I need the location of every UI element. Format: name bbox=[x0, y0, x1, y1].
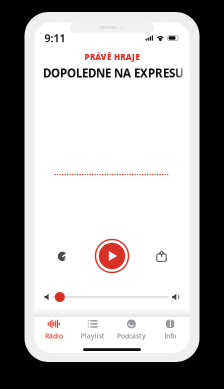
staticText: Podcasty bbox=[117, 331, 146, 340]
staticText: Playlist bbox=[81, 331, 105, 340]
staticText: PRÁVĚ HRAJE bbox=[84, 52, 139, 62]
staticText: Info bbox=[164, 331, 176, 340]
staticText: DOPOLEDNE NA EXPRESU bbox=[43, 65, 184, 81]
staticText: z bbox=[63, 253, 66, 260]
button[interactable]: Rádio bbox=[34, 317, 73, 341]
button[interactable]: Playlist bbox=[73, 317, 112, 341]
button[interactable]: Sleep timer bbox=[49, 239, 75, 273]
button[interactable]: i bbox=[151, 317, 190, 341]
staticText: 9:11 bbox=[44, 31, 65, 45]
staticText: i bbox=[169, 319, 171, 329]
staticText: Rádio bbox=[45, 331, 63, 340]
button[interactable]: Podcasty bbox=[112, 317, 151, 341]
button[interactable]: Play bbox=[95, 239, 129, 273]
button[interactable]: Share bbox=[148, 239, 174, 273]
